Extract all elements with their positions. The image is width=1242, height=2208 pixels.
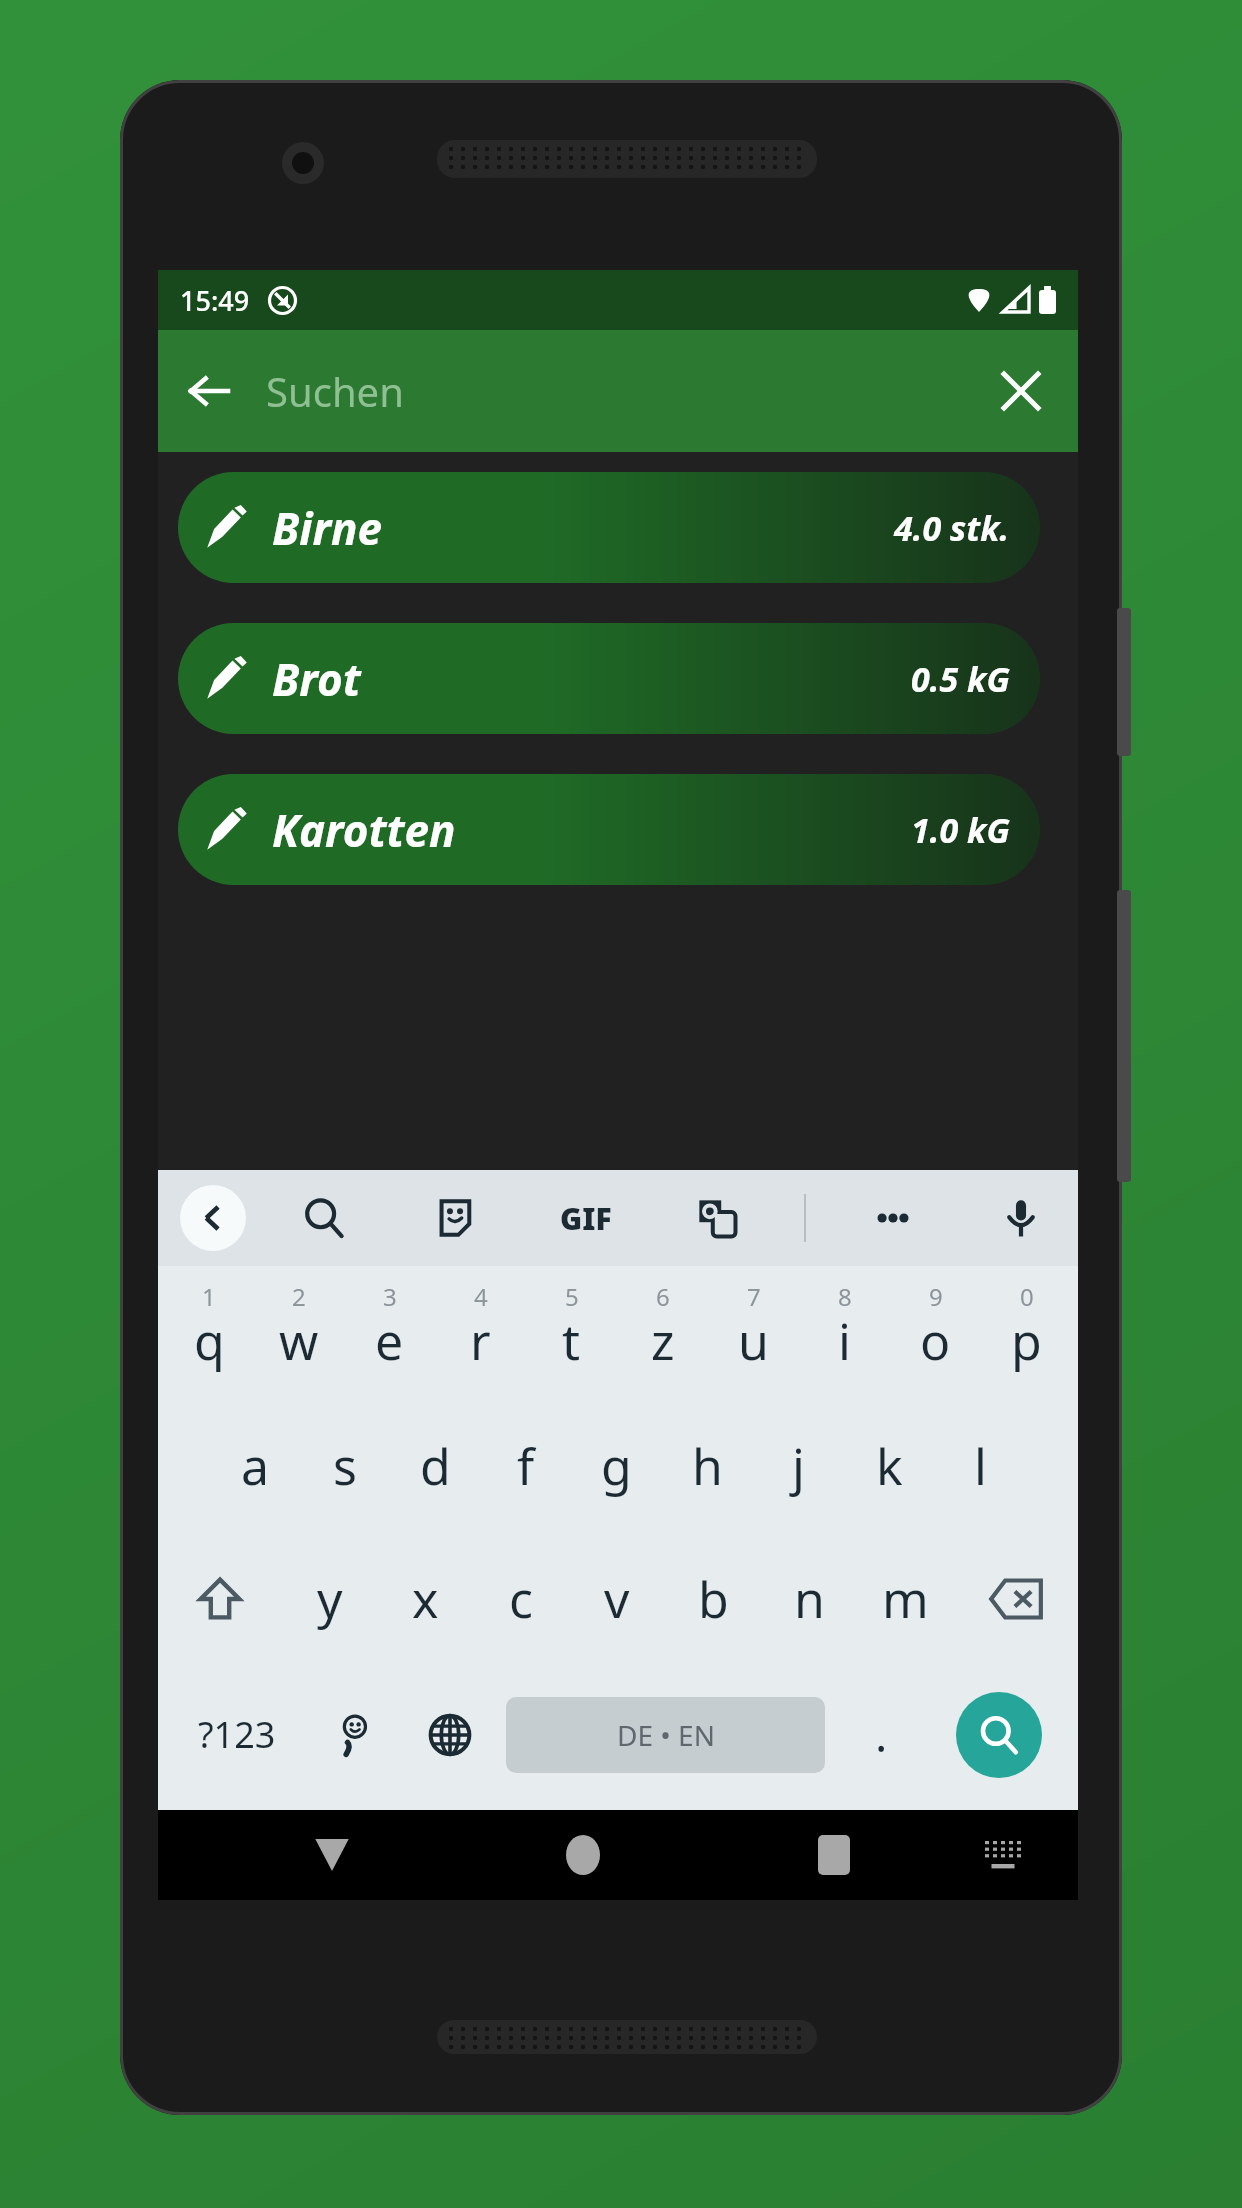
staticText: 1 (202, 1280, 216, 1313)
button[interactable]: 2 (254, 1266, 344, 1399)
staticText: 8 (838, 1280, 852, 1313)
staticText: l (974, 1432, 987, 1500)
staticText: Birne (272, 498, 383, 558)
staticText: q (194, 1307, 225, 1375)
staticText: 2 (292, 1280, 306, 1313)
button[interactable]: Birne (178, 472, 1040, 583)
button[interactable]: ?123 (168, 1665, 306, 1804)
staticText: 9 (929, 1280, 943, 1313)
button[interactable]: 0 (981, 1266, 1072, 1399)
staticText: f (517, 1432, 535, 1500)
button[interactable]: s (300, 1399, 390, 1532)
staticText: w (279, 1307, 319, 1375)
button[interactable]: 5 (526, 1266, 617, 1399)
button[interactable]: Voice input (986, 1183, 1056, 1253)
staticText: 1.0 kG (911, 807, 1010, 853)
button[interactable]: h (662, 1399, 753, 1532)
button[interactable]: Back (294, 1817, 370, 1893)
staticText: a (241, 1432, 270, 1500)
staticText: 4 (474, 1280, 488, 1313)
button[interactable]: n (761, 1532, 857, 1665)
button[interactable]: a (210, 1399, 300, 1532)
button[interactable]: x (377, 1532, 473, 1665)
button[interactable]: 9 (890, 1266, 981, 1399)
staticText: . (875, 1703, 888, 1766)
button[interactable]: Change language (402, 1665, 498, 1804)
staticText: t (562, 1307, 581, 1375)
staticText: 15:49 (180, 282, 250, 319)
button[interactable]: GIF (551, 1183, 621, 1253)
staticText: p (1011, 1307, 1042, 1375)
button[interactable]: f (480, 1399, 571, 1532)
staticText: 7 (747, 1280, 761, 1313)
button[interactable]: Translate (682, 1183, 752, 1253)
staticText: o (920, 1307, 951, 1375)
staticText: m (882, 1565, 929, 1633)
button[interactable]: Keyboard active (968, 1820, 1038, 1890)
button[interactable]: 6 (617, 1266, 708, 1399)
button[interactable]: Search (956, 1692, 1042, 1778)
button[interactable]: 3 (344, 1266, 435, 1399)
button[interactable]: Clear search (978, 348, 1064, 434)
staticText: Karotten (272, 800, 456, 860)
button[interactable]: Collapse toolbar (180, 1185, 246, 1251)
staticText: 0 (1020, 1280, 1034, 1313)
staticText: Brot (272, 649, 361, 709)
button[interactable]: g (571, 1399, 662, 1532)
staticText: k (876, 1432, 903, 1500)
button[interactable]: Home (545, 1817, 621, 1893)
staticText: ?123 (198, 1710, 276, 1759)
staticText: 5 (565, 1280, 579, 1313)
button[interactable]: v (569, 1532, 665, 1665)
button[interactable]: 1 (164, 1266, 254, 1399)
staticText: DE • EN (617, 1716, 715, 1754)
button[interactable]: l (935, 1399, 1026, 1532)
button[interactable]: Backspace (953, 1532, 1078, 1665)
button[interactable]: Emoji (306, 1665, 402, 1804)
staticText: 0.5 kG (911, 656, 1010, 702)
button[interactable]: b (665, 1532, 761, 1665)
staticText: GIF (560, 1198, 612, 1239)
staticText: j (792, 1432, 805, 1500)
staticText: y (317, 1565, 343, 1633)
staticText: z (651, 1307, 675, 1375)
button[interactable]: 7 (708, 1266, 799, 1399)
staticText: e (375, 1307, 404, 1375)
button[interactable]: More options (858, 1183, 928, 1253)
button[interactable]: DE • EN (506, 1697, 825, 1773)
staticText: h (692, 1432, 723, 1500)
staticText: g (601, 1432, 632, 1500)
button[interactable]: 4 (435, 1266, 526, 1399)
staticText: v (604, 1565, 630, 1633)
button[interactable]: Recent apps (796, 1817, 872, 1893)
staticText: 3 (383, 1280, 397, 1313)
button[interactable]: . (833, 1665, 929, 1804)
button[interactable]: Stickers (420, 1183, 490, 1253)
button[interactable]: Brot (178, 623, 1040, 734)
button[interactable]: c (473, 1532, 569, 1665)
staticText: x (412, 1565, 439, 1633)
button[interactable]: k (844, 1399, 935, 1532)
staticText: 6 (656, 1280, 670, 1313)
staticText: u (738, 1307, 769, 1375)
staticText: c (509, 1565, 533, 1633)
button[interactable]: j (753, 1399, 844, 1532)
staticText: b (698, 1565, 729, 1633)
button[interactable]: Search (289, 1183, 359, 1253)
button[interactable]: d (390, 1399, 480, 1532)
staticText: i (838, 1307, 851, 1375)
staticText: r (470, 1307, 491, 1375)
button[interactable]: Karotten (178, 774, 1040, 885)
button[interactable]: y (282, 1532, 377, 1665)
button[interactable]: Shift (158, 1532, 282, 1665)
button[interactable]: Back (166, 348, 252, 434)
button[interactable]: 8 (799, 1266, 890, 1399)
staticText: Suchen (266, 364, 404, 418)
staticText: s (333, 1432, 357, 1500)
staticText: d (420, 1432, 451, 1500)
staticText: 4.0 stk. (894, 505, 1010, 551)
button[interactable]: m (857, 1532, 953, 1665)
staticText: n (794, 1565, 825, 1633)
